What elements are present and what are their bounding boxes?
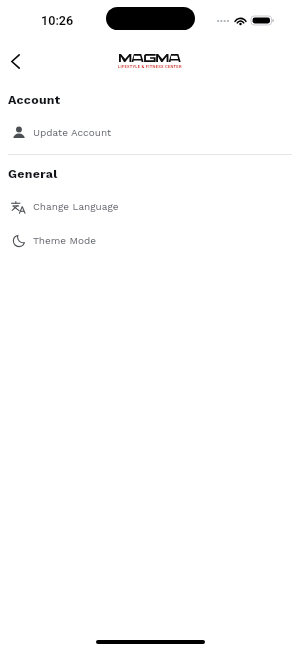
staticText: Theme Mode — [33, 235, 97, 247]
staticText: Account — [8, 92, 61, 107]
button[interactable]: Back — [0, 46, 30, 76]
staticText: LIFESTYLE & FITNESS CENTER — [118, 64, 182, 69]
staticText: Update Account — [33, 127, 112, 139]
staticText: Change Language — [33, 201, 119, 213]
button[interactable]: Change Language — [0, 196, 300, 222]
button[interactable]: Theme Mode — [0, 230, 300, 256]
button[interactable]: Update Account — [0, 122, 300, 148]
staticText: 10:26 — [41, 13, 74, 28]
staticText: General — [8, 166, 58, 181]
